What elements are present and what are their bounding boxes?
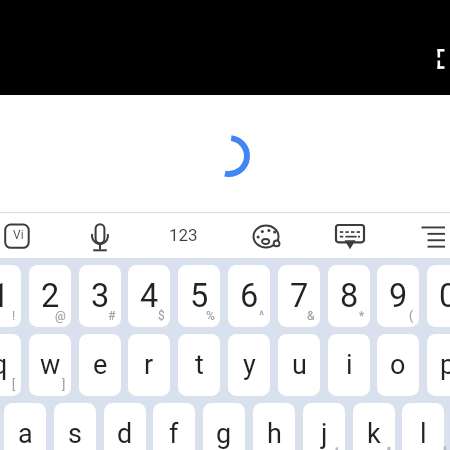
staticText: $	[158, 309, 165, 323]
staticText: 9	[389, 277, 408, 315]
staticText: q	[0, 349, 8, 381]
button[interactable]: t	[178, 334, 220, 396]
staticText: @	[55, 309, 66, 323]
button[interactable]: y	[228, 334, 270, 396]
button[interactable]: j	[303, 403, 345, 450]
staticText: 4	[140, 277, 159, 315]
button[interactable]: k	[353, 403, 395, 450]
button[interactable]: s	[54, 403, 96, 450]
button[interactable]: 8	[328, 265, 370, 327]
button[interactable]: 1	[0, 265, 21, 327]
staticText: s	[68, 418, 82, 450]
staticText: 5	[190, 277, 209, 315]
staticText: 7	[290, 277, 309, 315]
button[interactable]: 0	[427, 265, 450, 327]
button[interactable]	[246, 214, 286, 257]
staticText: !	[12, 309, 16, 323]
button[interactable]: 9	[377, 265, 419, 327]
button[interactable]: p	[427, 334, 450, 396]
button[interactable]: g	[203, 403, 245, 450]
staticText: f	[169, 418, 179, 450]
button[interactable]: l	[402, 403, 444, 450]
staticText: g	[216, 418, 232, 450]
staticText: i	[346, 349, 353, 381]
staticText: u	[292, 349, 307, 381]
staticText: 6	[240, 277, 259, 315]
button[interactable]: i	[328, 334, 370, 396]
staticText: *	[359, 309, 365, 323]
button[interactable]: q	[0, 334, 21, 396]
button[interactable]: 7	[278, 265, 320, 327]
button[interactable]	[80, 214, 120, 257]
staticText: ]	[62, 378, 66, 392]
staticText: y	[243, 349, 256, 381]
staticText: k	[367, 418, 381, 450]
button[interactable]: 5	[178, 265, 220, 327]
button[interactable]: h	[253, 403, 295, 450]
staticText: 1	[0, 277, 10, 315]
staticText: (	[409, 309, 414, 323]
button[interactable]: w	[29, 334, 71, 396]
button[interactable]	[330, 214, 370, 257]
button[interactable]: 2	[29, 265, 71, 327]
staticText: 3	[91, 277, 110, 315]
button[interactable]: 3	[79, 265, 121, 327]
button[interactable]: r	[128, 334, 170, 396]
button[interactable]: a	[4, 403, 46, 450]
staticText: 2	[41, 277, 60, 315]
button[interactable]: o	[377, 334, 419, 396]
button[interactable]: 6	[228, 265, 270, 327]
staticText: l	[420, 418, 427, 450]
button[interactable]: e	[79, 334, 121, 396]
button[interactable]: f	[153, 403, 195, 450]
staticText: e	[93, 349, 108, 381]
staticText: [	[12, 378, 16, 392]
staticText: 0	[439, 277, 450, 315]
staticText: h	[267, 418, 282, 450]
staticText: Vi	[13, 228, 24, 242]
staticText: %	[206, 309, 215, 323]
staticText: o	[390, 349, 406, 381]
staticText: ^	[259, 309, 265, 323]
button[interactable]	[412, 214, 450, 257]
staticText: w	[40, 349, 61, 381]
staticText: p	[440, 349, 450, 381]
button[interactable]: 123	[163, 214, 203, 257]
staticText: 123	[169, 225, 198, 245]
staticText: #	[108, 309, 116, 323]
button[interactable]: u	[278, 334, 320, 396]
staticText: a	[18, 418, 33, 450]
staticText: &	[307, 309, 315, 323]
staticText: j	[321, 418, 328, 450]
staticText: t	[195, 349, 204, 381]
button[interactable]: Vi	[1, 214, 35, 257]
staticText: 8	[340, 277, 359, 315]
button[interactable]: d	[104, 403, 146, 450]
staticText: r	[144, 349, 154, 381]
staticText: d	[117, 418, 133, 450]
button[interactable]: 4	[128, 265, 170, 327]
